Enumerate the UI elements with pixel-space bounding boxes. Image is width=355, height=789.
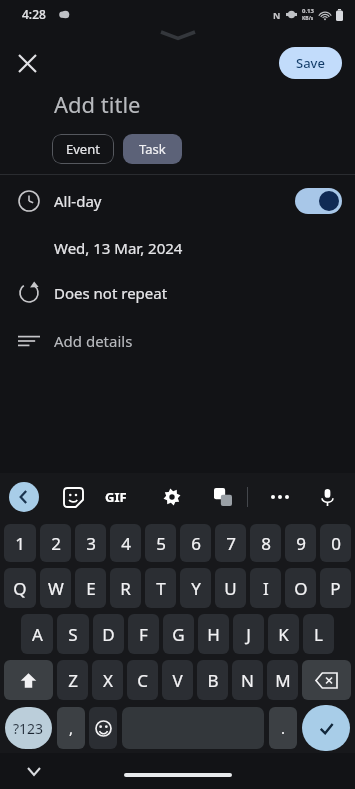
button[interactable]: ?123 bbox=[5, 707, 52, 749]
button[interactable]: L bbox=[303, 614, 334, 654]
button[interactable]: All-day toggle bbox=[295, 188, 342, 214]
button[interactable]: Add details bbox=[0, 317, 355, 365]
button[interactable]: , bbox=[57, 707, 85, 749]
staticText: E bbox=[86, 577, 96, 600]
button[interactable]: Q bbox=[4, 568, 36, 608]
staticText: Z bbox=[68, 669, 78, 692]
button[interactable]: Keyboard settings bbox=[157, 482, 187, 512]
button[interactable]: J bbox=[233, 614, 264, 654]
button[interactable]: Does not repeat bbox=[0, 269, 355, 317]
button[interactable]: 8 bbox=[250, 524, 281, 562]
button[interactable]: C bbox=[127, 660, 158, 700]
staticText: K bbox=[278, 623, 289, 646]
button[interactable]: U bbox=[215, 568, 246, 608]
button[interactable]: F bbox=[128, 614, 159, 654]
staticText: U bbox=[224, 577, 237, 600]
button[interactable]: N bbox=[232, 660, 263, 700]
button[interactable]: 4 bbox=[110, 524, 141, 562]
staticText: 0 bbox=[331, 532, 341, 555]
button[interactable]: Back bbox=[9, 482, 39, 512]
button[interactable]: 2 bbox=[40, 524, 71, 562]
button[interactable]: Backspace bbox=[302, 660, 351, 700]
button[interactable]: Y bbox=[180, 568, 211, 608]
button[interactable]: 9 bbox=[285, 524, 316, 562]
staticText: T bbox=[156, 577, 166, 600]
staticText: All-day bbox=[54, 191, 102, 211]
staticText: I bbox=[263, 577, 269, 600]
button[interactable]: . bbox=[269, 707, 297, 749]
staticText: H bbox=[207, 623, 220, 646]
staticText: V bbox=[172, 669, 183, 692]
button[interactable]: Voice input bbox=[312, 482, 342, 512]
staticText: A bbox=[32, 623, 43, 646]
staticText: Wed, 13 Mar, 2024 bbox=[54, 238, 183, 258]
button[interactable]: B bbox=[197, 660, 228, 700]
staticText: , bbox=[69, 718, 74, 738]
button[interactable]: M bbox=[267, 660, 298, 700]
button[interactable]: Shift bbox=[4, 660, 53, 700]
button[interactable]: 7 bbox=[215, 524, 246, 562]
staticText: W bbox=[48, 577, 64, 600]
button[interactable]: G bbox=[163, 614, 194, 654]
staticText: 0.13 bbox=[302, 7, 314, 15]
staticText: B bbox=[207, 669, 219, 692]
button[interactable]: Event bbox=[52, 134, 114, 164]
staticText: G bbox=[172, 623, 185, 646]
button[interactable]: S bbox=[57, 614, 89, 654]
button[interactable]: 1 bbox=[4, 524, 36, 562]
staticText: F bbox=[139, 623, 148, 646]
button[interactable]: Save bbox=[279, 47, 342, 79]
button[interactable]: More options bbox=[265, 482, 295, 512]
staticText: Does not repeat bbox=[54, 283, 168, 303]
button[interactable]: Close bbox=[8, 44, 46, 82]
button[interactable]: Add title bbox=[0, 84, 355, 124]
button[interactable]: D bbox=[93, 614, 124, 654]
button[interactable]: Stickers bbox=[58, 482, 88, 512]
staticText: Save bbox=[296, 54, 325, 72]
staticText: 7 bbox=[226, 532, 236, 555]
staticText: S bbox=[68, 623, 78, 646]
staticText: Add details bbox=[54, 331, 133, 351]
button[interactable]: Enter bbox=[302, 705, 350, 751]
staticText: Add title bbox=[54, 89, 141, 119]
button[interactable]: 3 bbox=[75, 524, 106, 562]
button[interactable]: GIF bbox=[105, 482, 127, 512]
staticText: ?123 bbox=[13, 719, 44, 738]
staticText: 1 bbox=[15, 532, 25, 555]
button[interactable]: Hide keyboard bbox=[22, 759, 46, 783]
button[interactable]: W bbox=[40, 568, 71, 608]
button[interactable]: Wed, 13 Mar, 2024 bbox=[0, 227, 355, 269]
button[interactable]: V bbox=[162, 660, 193, 700]
staticText: Q bbox=[13, 577, 27, 600]
staticText: KB/s bbox=[302, 15, 314, 22]
staticText: O bbox=[294, 577, 308, 600]
button[interactable]: P bbox=[320, 568, 351, 608]
staticText: 9 bbox=[296, 532, 306, 555]
button[interactable]: K bbox=[268, 614, 299, 654]
button[interactable]: X bbox=[92, 660, 123, 700]
staticText: N bbox=[241, 669, 254, 692]
button[interactable]: All-day bbox=[0, 175, 355, 227]
staticText: 4 bbox=[121, 532, 131, 555]
button[interactable]: Emoji bbox=[89, 707, 117, 749]
button[interactable]: E bbox=[75, 568, 106, 608]
button[interactable]: Translate bbox=[208, 482, 238, 512]
button[interactable]: 0 bbox=[320, 524, 351, 562]
button[interactable]: R bbox=[110, 568, 141, 608]
button[interactable]: Task bbox=[123, 134, 182, 164]
staticText: 4:28 bbox=[22, 6, 46, 22]
staticText: 3 bbox=[86, 532, 96, 555]
button[interactable]: 5 bbox=[145, 524, 176, 562]
staticText: Y bbox=[191, 577, 201, 600]
button[interactable]: I bbox=[250, 568, 281, 608]
staticText: R bbox=[120, 577, 131, 600]
button[interactable]: Z bbox=[57, 660, 88, 700]
button[interactable]: O bbox=[285, 568, 316, 608]
button[interactable]: A bbox=[21, 614, 53, 654]
button[interactable]: 6 bbox=[180, 524, 211, 562]
staticText: Event bbox=[66, 140, 100, 158]
button[interactable]: H bbox=[198, 614, 229, 654]
button[interactable]: T bbox=[145, 568, 176, 608]
staticText: L bbox=[314, 623, 323, 646]
